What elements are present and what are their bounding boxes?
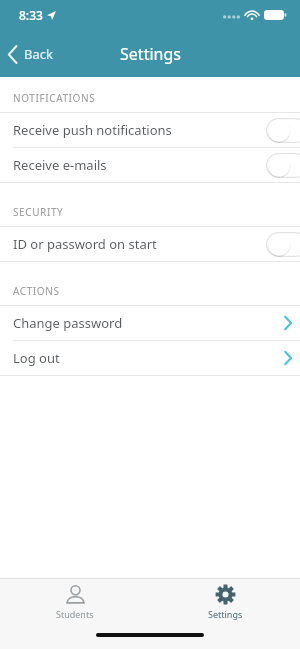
staticText: Change password [13, 314, 123, 332]
other: Receive e-mails [266, 153, 300, 178]
other: ID or password on start [266, 232, 300, 257]
staticText: ID or password on start [13, 235, 157, 253]
button[interactable]: Change password [0, 306, 300, 340]
staticText: Back [24, 45, 53, 63]
staticText: NOTIFICATIONS [13, 91, 96, 105]
staticText: SECURITY [13, 205, 64, 219]
button[interactable]: Receive push notifications [0, 113, 300, 147]
staticText: 8:33 [19, 7, 43, 23]
button[interactable]: Students [0, 579, 150, 626]
staticText: Settings [208, 608, 243, 620]
button[interactable]: Log out [0, 341, 300, 375]
button[interactable]: Settings [150, 579, 300, 626]
staticText: Students [56, 608, 94, 620]
button[interactable]: Back [0, 32, 67, 76]
staticText: ACTIONS [13, 284, 60, 298]
other: Receive push notifications [266, 118, 300, 143]
button[interactable]: ID or password on start [0, 227, 300, 261]
staticText: Settings [120, 43, 181, 65]
button[interactable]: Receive e-mails [0, 148, 300, 182]
staticText: Receive e-mails [13, 156, 107, 174]
staticText: Log out [13, 349, 60, 367]
staticText: Receive push notifications [13, 121, 172, 139]
